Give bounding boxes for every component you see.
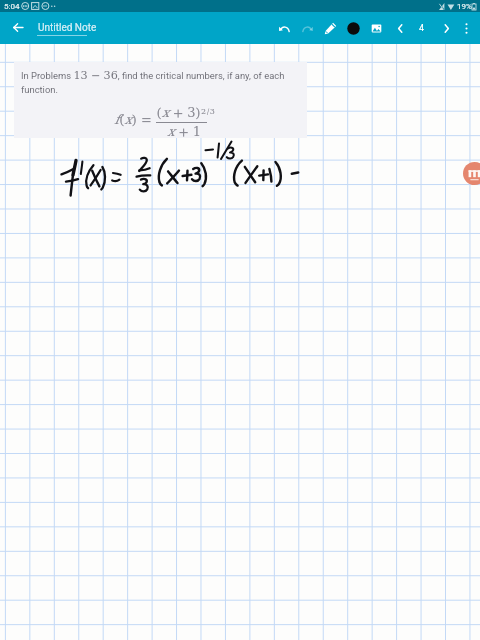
staticText: f(x) =: [114, 114, 152, 127]
staticText: x + 1: [167, 126, 202, 139]
button[interactable]: Previous page: [388, 13, 412, 43]
button[interactable]: Undo: [272, 13, 296, 43]
staticText: 4: [419, 23, 425, 34]
button[interactable]: Redo: [295, 13, 319, 43]
staticText: Untitled Note: [38, 22, 97, 34]
button[interactable]: Pen: [318, 13, 342, 43]
button[interactable]: Insert image: [364, 13, 388, 43]
staticText: In Problems 13 − 36, find the critical n…: [21, 70, 297, 95]
staticText: (x + 3)2/3: [156, 107, 215, 120]
staticText: 19%: [457, 2, 472, 11]
button[interactable]: Next page: [434, 13, 458, 43]
button[interactable]: Collaborator avatar: [463, 162, 480, 185]
button[interactable]: Colour: [341, 13, 365, 43]
button[interactable]: Back: [4, 13, 32, 41]
button[interactable]: 4: [410, 13, 434, 43]
button[interactable]: More options: [454, 13, 478, 43]
staticText: 5:04: [4, 2, 20, 11]
button[interactable]: Untitled Note: [36, 15, 95, 41]
